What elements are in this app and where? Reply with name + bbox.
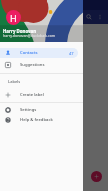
button[interactable]: Search xyxy=(84,12,94,22)
staticText: Contacts xyxy=(20,50,38,56)
staticText: Suggestions xyxy=(20,62,45,68)
button[interactable]: Contacts xyxy=(0,48,78,58)
button[interactable]: Help & feedback xyxy=(0,115,78,125)
staticText: Labels xyxy=(8,79,21,84)
button[interactable]: Account xyxy=(6,10,21,25)
button[interactable]: Add contact xyxy=(91,171,102,182)
staticText: Settings xyxy=(20,107,37,113)
button[interactable]: Settings xyxy=(0,105,78,115)
staticText: H xyxy=(10,12,17,24)
button[interactable]: Suggestions xyxy=(0,60,78,70)
button[interactable]: More options xyxy=(96,13,104,21)
staticText: Help & feedback xyxy=(20,117,53,123)
button[interactable]: Create label xyxy=(0,90,78,100)
staticText: Harry Donovan xyxy=(3,28,37,34)
staticText: 47 xyxy=(69,51,74,56)
staticText: Create label xyxy=(20,92,44,98)
staticText: harry.donovan@duckduck.com xyxy=(3,33,56,38)
